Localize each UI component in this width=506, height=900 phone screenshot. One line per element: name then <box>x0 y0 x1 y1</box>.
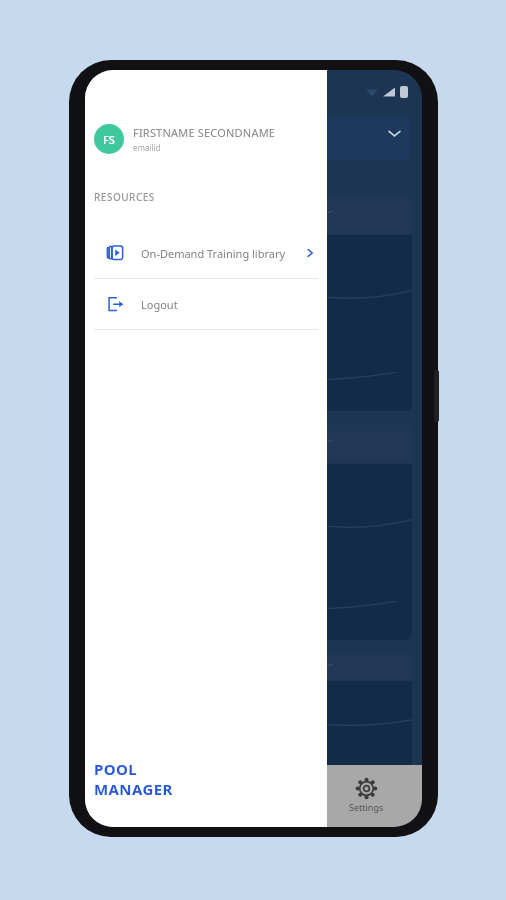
button[interactable]: FS <box>94 124 317 154</box>
staticText: Settings <box>349 801 384 813</box>
staticText: Logout <box>141 297 178 312</box>
button[interactable]: Settings <box>310 779 422 813</box>
staticText: MANAGER <box>94 779 173 799</box>
staticText: Customer <box>109 122 163 137</box>
staticText: Street, Any City, 99999 <box>109 140 204 152</box>
button[interactable]: Customer <box>99 116 410 160</box>
button[interactable]: Logout <box>85 279 327 329</box>
staticText: On-Demand Training library <box>141 246 286 261</box>
staticText: emailid <box>133 142 161 153</box>
staticText: FIRSTNAME SECONDNAME <box>133 125 276 140</box>
staticText: POOL <box>94 759 138 779</box>
staticText: RESOURCES <box>94 190 155 204</box>
button[interactable]: On-Demand Training library <box>85 228 327 278</box>
button[interactable]: Home <box>85 779 198 813</box>
staticText: FS <box>103 132 115 147</box>
